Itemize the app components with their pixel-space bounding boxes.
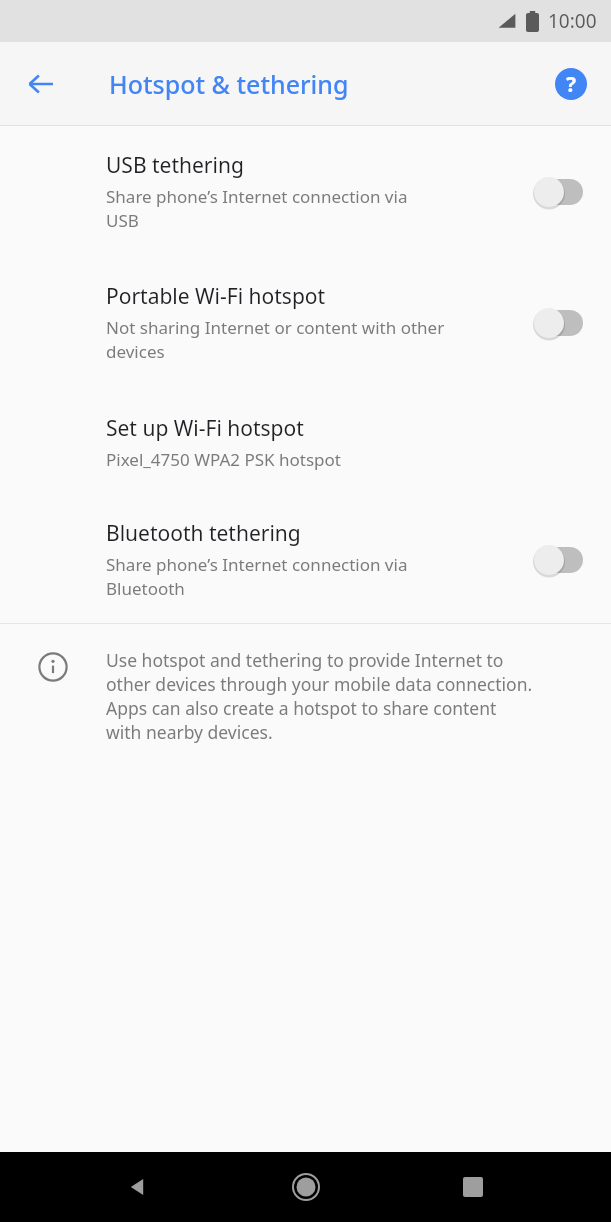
staticText: Not sharing Internet or content with oth…: [106, 316, 445, 363]
button[interactable]: Recent apps: [444, 1158, 502, 1216]
staticText: Set up Wi-Fi hotspot: [106, 414, 304, 443]
staticText: Portable Wi-Fi hotspot: [106, 282, 326, 311]
staticText: Use hotspot and tethering to provide Int…: [106, 648, 533, 744]
button[interactable]: Portable Wi-Fi hotspot: [0, 257, 611, 388]
button[interactable]: Home: [277, 1158, 335, 1216]
staticText: Hotspot & tethering: [109, 67, 349, 101]
staticText: Share phone’s Internet connection via US…: [106, 185, 408, 232]
staticText: 10:00: [548, 8, 597, 34]
button[interactable]: Set up Wi-Fi hotspot: [0, 388, 611, 496]
button[interactable]: USB tethering: [0, 126, 611, 257]
staticText: ?: [566, 70, 577, 99]
staticText: Bluetooth tethering: [106, 519, 301, 548]
staticText: Share phone’s Internet connection via Bl…: [106, 553, 408, 600]
button[interactable]: Bluetooth tethering: [0, 496, 611, 623]
button[interactable]: Back: [108, 1158, 166, 1216]
button[interactable]: Help: [549, 62, 593, 106]
staticText: USB tethering: [106, 151, 244, 180]
button[interactable]: Back: [14, 57, 68, 111]
staticText: Pixel_4750 WPA2 PSK hotspot: [106, 448, 341, 471]
